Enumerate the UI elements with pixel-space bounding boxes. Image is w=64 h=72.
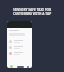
staticText: SENSORY SAFE TAXI FOR CUSTOMERS WITH A T… <box>7 8 57 16</box>
button[interactable] <box>7 21 32 68</box>
